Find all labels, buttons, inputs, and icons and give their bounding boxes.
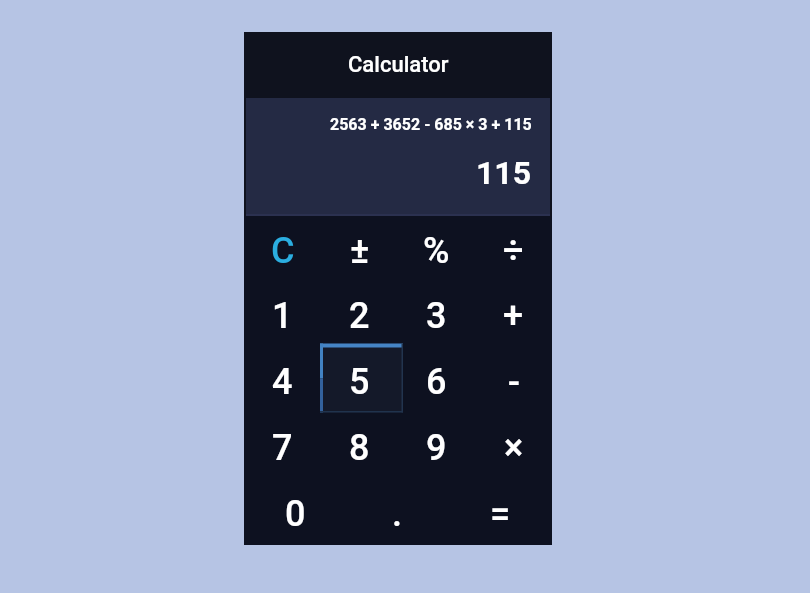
button[interactable]: % (398, 216, 475, 281)
staticText: . (392, 493, 403, 535)
staticText: 7 (272, 427, 293, 469)
staticText: 9 (426, 427, 447, 469)
staticText: 8 (349, 427, 370, 469)
button[interactable]: 6 (398, 347, 475, 413)
button[interactable]: 0 (244, 479, 346, 545)
staticText: × (504, 427, 524, 469)
button[interactable]: 5 (321, 347, 398, 413)
button[interactable]: = (449, 479, 552, 545)
button[interactable]: 9 (398, 413, 475, 479)
staticText: 2 (349, 295, 370, 337)
button[interactable]: 3 (398, 281, 475, 347)
staticText: = (490, 493, 511, 535)
button[interactable]: ÷ (475, 216, 552, 281)
staticText: 2563 + 3652 - 685 × 3 + 115 (330, 115, 532, 134)
button[interactable]: × (475, 413, 552, 479)
staticText: 5 (349, 361, 370, 403)
button[interactable]: . (346, 479, 449, 545)
staticText: + (503, 295, 524, 337)
staticText: 3 (426, 295, 447, 337)
button[interactable]: - (475, 347, 552, 413)
staticText: 1 (272, 295, 293, 337)
staticText: 0 (285, 493, 306, 535)
button[interactable]: 8 (321, 413, 398, 479)
button[interactable]: + (475, 281, 552, 347)
staticText: ÷ (503, 230, 524, 272)
staticText: - (508, 361, 520, 403)
staticText: 6 (426, 361, 447, 403)
staticText: 115 (476, 154, 532, 192)
button[interactable]: 4 (244, 347, 321, 413)
staticText: 4 (272, 361, 293, 403)
button[interactable]: 2 (321, 281, 398, 347)
staticText: ± (350, 230, 370, 272)
button[interactable]: 1 (244, 281, 321, 347)
staticText: Calculator (348, 52, 449, 78)
staticText: % (423, 230, 450, 272)
button[interactable]: 7 (244, 413, 321, 479)
staticText: C (271, 230, 295, 272)
button[interactable]: ± (321, 216, 398, 281)
button[interactable]: C (244, 216, 321, 281)
